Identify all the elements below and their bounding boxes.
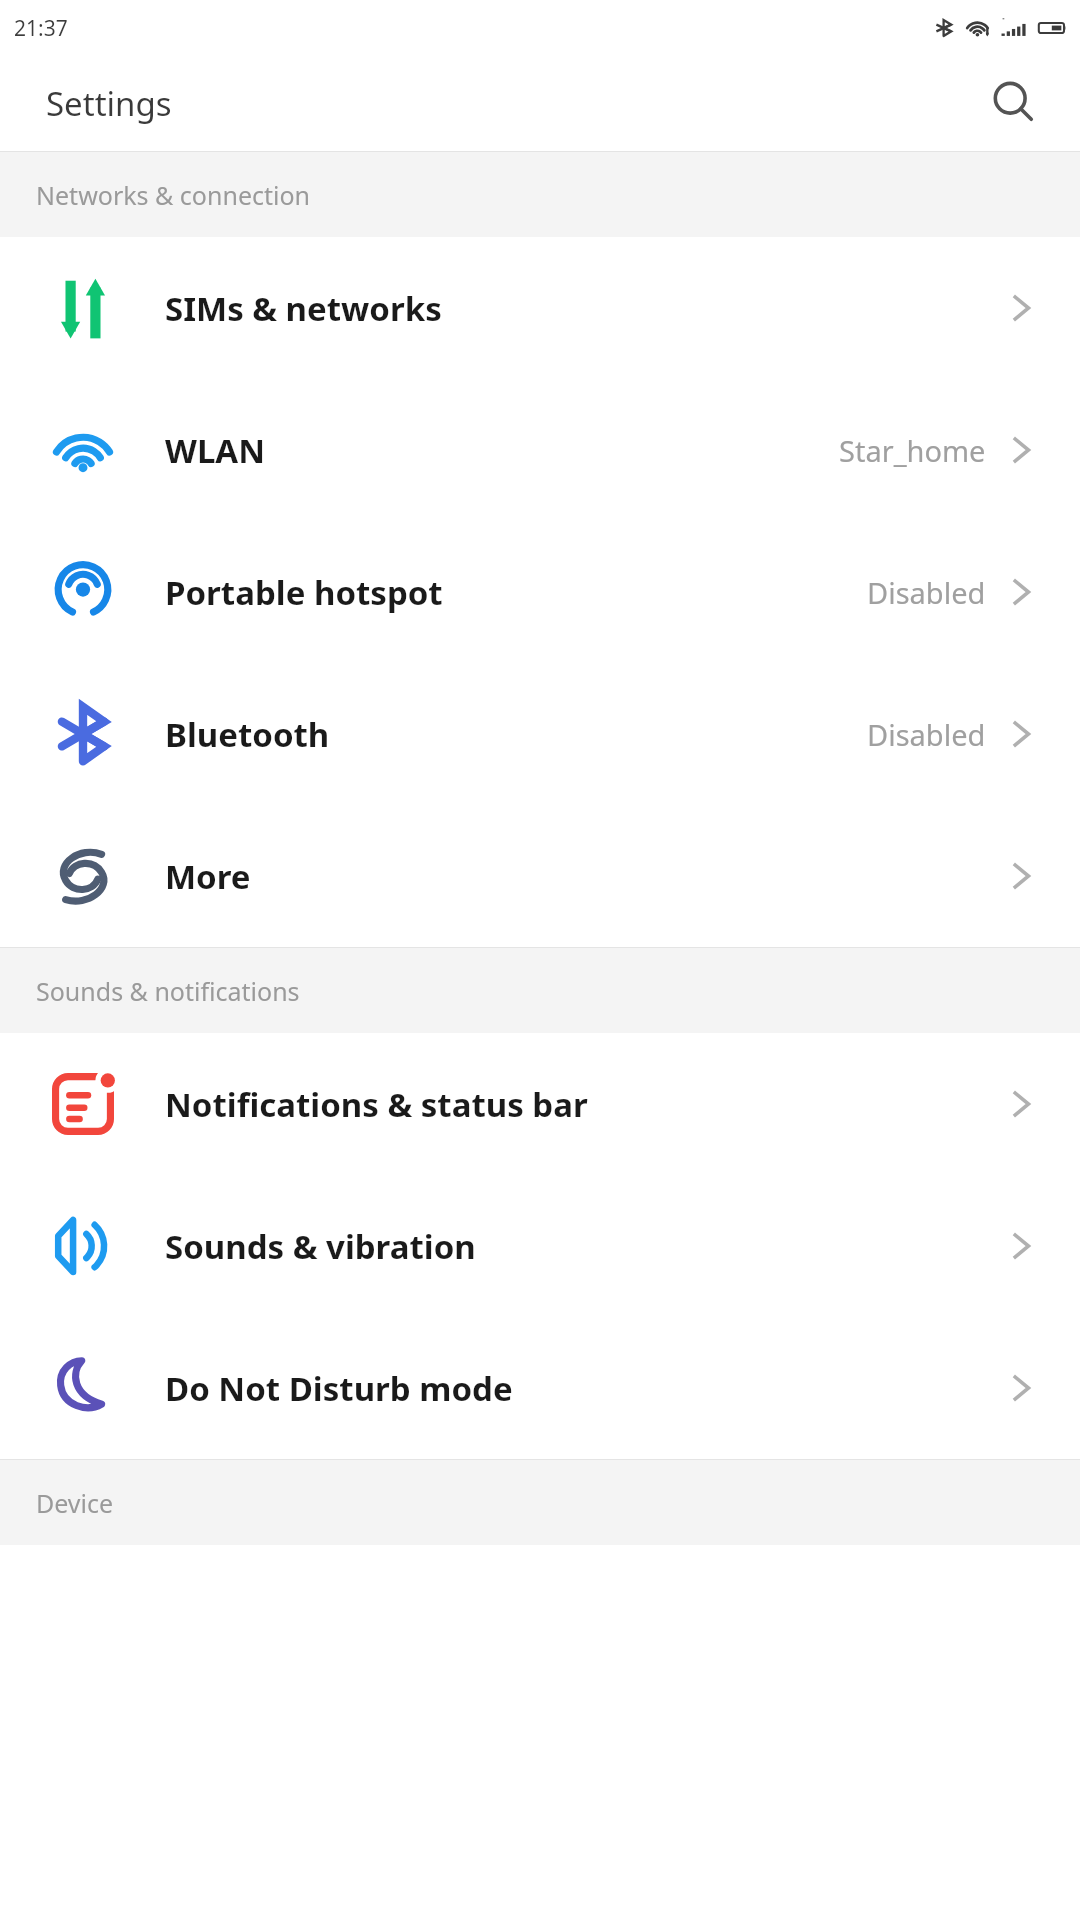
staticText: Bluetooth bbox=[165, 712, 330, 757]
staticText: Portable hotspot bbox=[165, 570, 443, 615]
button[interactable]: Sounds & vibration bbox=[0, 1175, 1080, 1317]
staticText: More bbox=[165, 854, 251, 899]
button[interactable]: Bluetooth bbox=[0, 663, 1080, 805]
staticText: Disabled bbox=[867, 573, 986, 612]
staticText: WLAN bbox=[165, 428, 266, 473]
staticText: Settings bbox=[46, 81, 172, 126]
staticText: Networks & connection bbox=[36, 178, 311, 212]
button[interactable]: Notifications & status bar bbox=[0, 1033, 1080, 1175]
staticText: SIMs & networks bbox=[165, 286, 442, 331]
button[interactable]: WLAN bbox=[0, 379, 1080, 521]
button[interactable]: Search bbox=[980, 69, 1050, 139]
button[interactable]: Do Not Disturb mode bbox=[0, 1317, 1080, 1459]
staticText: Disabled bbox=[867, 715, 986, 754]
staticText: Sounds & vibration bbox=[165, 1224, 476, 1269]
staticText: Notifications & status bar bbox=[165, 1082, 588, 1127]
staticText: Star_home bbox=[839, 431, 986, 470]
button[interactable]: SIMs & networks bbox=[0, 237, 1080, 379]
staticText: 21:37 bbox=[14, 14, 68, 43]
staticText: Device bbox=[36, 1486, 114, 1520]
button[interactable]: More bbox=[0, 805, 1080, 947]
staticText: Sounds & notifications bbox=[36, 974, 300, 1008]
staticText: Do Not Disturb mode bbox=[165, 1366, 513, 1411]
button[interactable]: Portable hotspot bbox=[0, 521, 1080, 663]
